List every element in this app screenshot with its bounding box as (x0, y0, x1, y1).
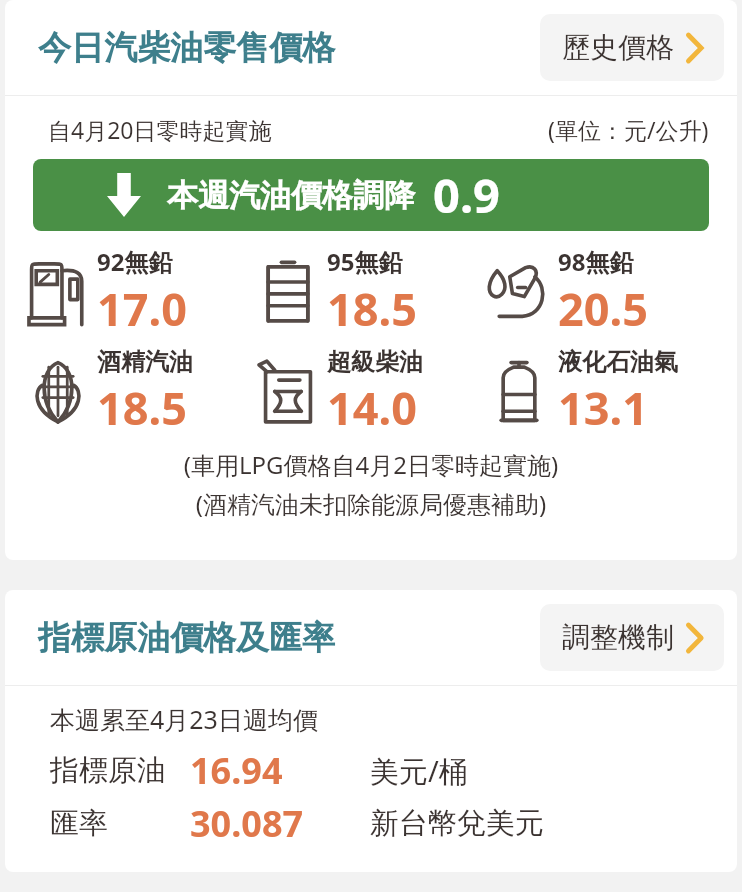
staticText: 酒精汽油 (97, 347, 193, 377)
other: 價格下降 (107, 173, 141, 217)
staticText: 98無鉛 (558, 245, 634, 278)
button[interactable]: 調整機制 (540, 604, 724, 671)
other: 酒精汽油 (25, 355, 91, 431)
staticText: 今日汽柴油零售價格 (38, 27, 335, 69)
button[interactable]: 價格下降 (33, 159, 709, 231)
staticText: 92無鉛 (97, 245, 173, 278)
staticText: 歷史價格 (562, 30, 674, 65)
button[interactable]: 92無鉛 (25, 245, 255, 339)
button[interactable]: 98無鉛 (486, 245, 717, 339)
staticText: (單位：元/公升) (548, 114, 709, 145)
button[interactable]: 液化石油氣 (486, 347, 717, 438)
staticText: 超級柴油 (327, 347, 423, 377)
staticText: 95無鉛 (327, 245, 403, 278)
staticText: 調整機制 (562, 620, 674, 655)
staticText: 新台幣兌美元 (370, 805, 544, 842)
staticText: 13.1 (558, 377, 648, 438)
staticText: (酒精汽油未扣除能源局優惠補助) (5, 487, 737, 520)
staticText: 14.0 (327, 377, 417, 438)
button[interactable]: 95無鉛 (255, 245, 486, 339)
staticText: 液化石油氣 (558, 347, 678, 377)
button[interactable]: 歷史價格 (540, 14, 724, 81)
staticText: 美元/桶 (370, 751, 468, 791)
staticText: 匯率 (50, 805, 108, 842)
staticText: (車用LPG價格自4月2日零時起實施) (5, 448, 737, 481)
staticText: 本週累至4月23日週均價 (50, 702, 318, 736)
staticText: 本週汽油價格調降 (167, 176, 415, 215)
staticText: 18.5 (97, 377, 187, 438)
staticText: 17.0 (97, 278, 187, 339)
other: 95無鉛 (255, 254, 321, 330)
staticText: 自4月20日零時起實施 (48, 114, 272, 145)
staticText: 20.5 (558, 278, 648, 339)
staticText: 0.9 (433, 163, 500, 227)
staticText: 指標原油 (50, 752, 166, 789)
other: 超級柴油 (255, 355, 321, 431)
other: 液化石油氣 (486, 355, 552, 431)
staticText: 30.087 (190, 799, 304, 848)
staticText: 16.94 (190, 746, 283, 795)
staticText: 指標原油價格及匯率 (38, 617, 335, 659)
other: 92無鉛 (25, 254, 91, 330)
other: 98無鉛 (486, 254, 552, 330)
button[interactable]: 酒精汽油 (25, 347, 255, 438)
staticText: 18.5 (327, 278, 417, 339)
button[interactable]: 超級柴油 (255, 347, 486, 438)
